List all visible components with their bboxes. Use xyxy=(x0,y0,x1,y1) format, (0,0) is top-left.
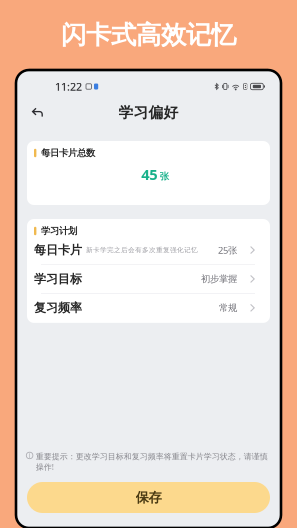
staticText: 每日卡片 xyxy=(34,243,82,257)
button[interactable]: Back xyxy=(28,103,47,122)
staticText: 学习计划 xyxy=(41,225,77,237)
staticText: B xyxy=(243,82,247,91)
staticText: 保存 xyxy=(135,489,161,506)
staticText: 复习频率 xyxy=(34,300,82,315)
button[interactable]: 复习频率 xyxy=(34,294,263,322)
staticText: 学习偏好 xyxy=(118,103,178,121)
staticText: 初步掌握 xyxy=(201,273,237,285)
button[interactable]: 每日卡片 xyxy=(34,236,263,264)
staticText: 常规 xyxy=(219,302,237,314)
staticText: i xyxy=(29,451,31,460)
staticText: 学习目标 xyxy=(34,272,82,286)
staticText: 新卡学完之后会有多次重复强化记忆 xyxy=(86,246,198,254)
staticText: 45 xyxy=(141,164,157,184)
staticText: 11:22 xyxy=(55,79,82,94)
button[interactable]: 学习目标 xyxy=(34,265,263,293)
staticText: 每日卡片总数 xyxy=(41,147,95,159)
staticText: 25张 xyxy=(218,244,237,256)
button[interactable]: 保存 xyxy=(27,482,270,513)
staticText: 重要提示：更改学习目标和复习频率将重置卡片学习状态，请谨慎操作! xyxy=(36,451,268,472)
staticText: 张 xyxy=(160,170,169,182)
staticText: 闪卡式高效记忆 xyxy=(61,19,236,50)
